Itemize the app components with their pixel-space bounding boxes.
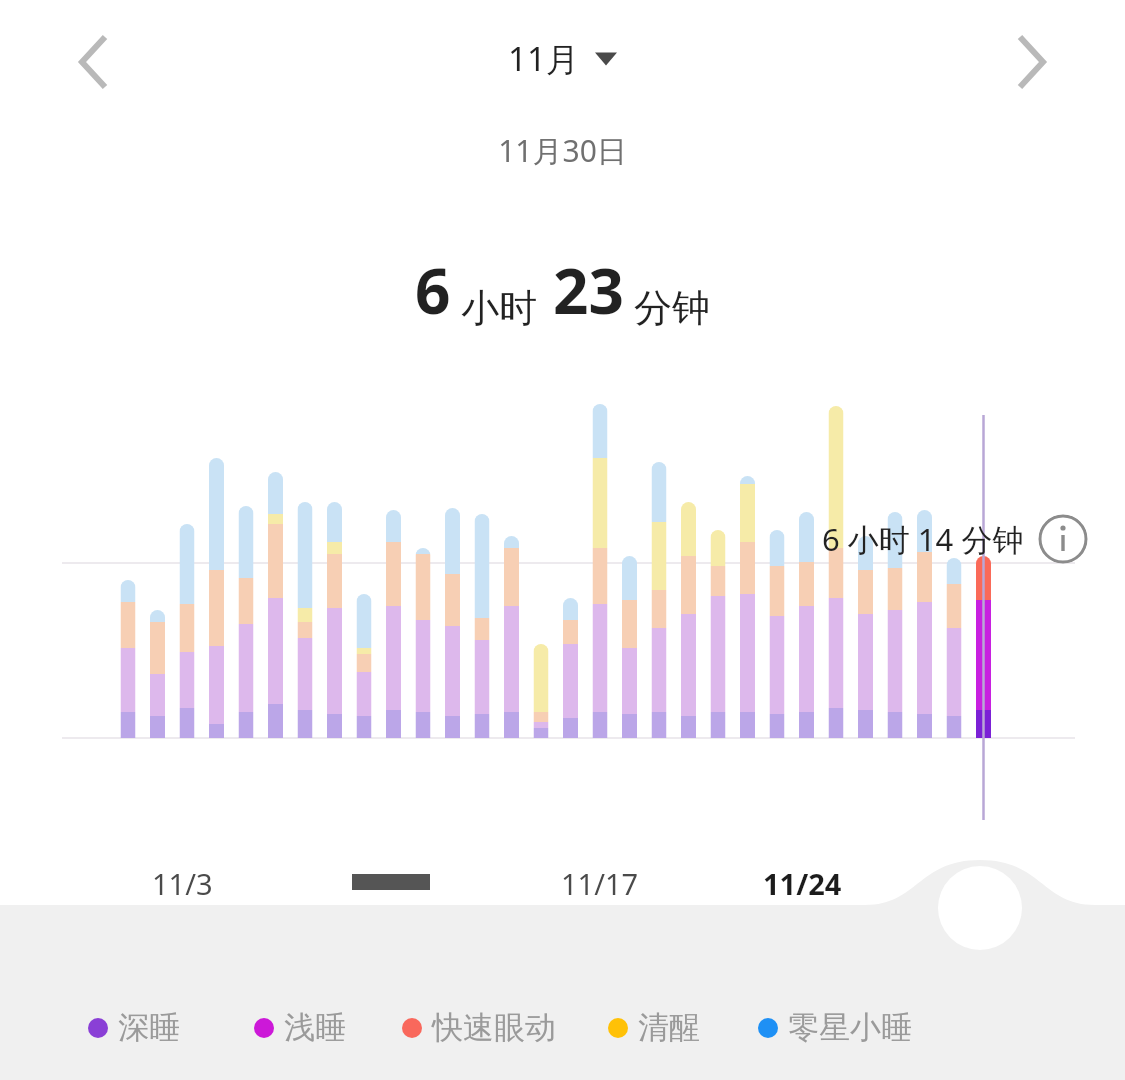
button[interactable]: 快速眼动 [402,1008,556,1047]
staticText: 6 小时 14 分钟 [822,518,1024,560]
staticText: 零星小睡 [788,1008,912,1047]
button[interactable]: 清醒 [608,1008,700,1047]
staticText: 清醒 [638,1008,700,1047]
button[interactable]: Next month [989,20,1073,104]
staticText: 浅睡 [284,1008,346,1047]
staticText: 6 [415,248,451,332]
button[interactable]: 零星小睡 [758,1008,912,1047]
staticText: 小时 [461,284,537,332]
staticText: 11月 [508,36,579,81]
staticText: 11/24 [763,864,842,903]
button[interactable]: Scrub handle [938,866,1022,950]
staticText: 快速眼动 [432,1008,556,1047]
button[interactable]: 深睡 [88,1008,180,1047]
staticText: 11/3 [152,864,213,903]
staticText: 23 [553,248,624,332]
button[interactable]: 浅睡 [254,1008,346,1047]
button[interactable]: 11月 [500,30,625,87]
staticText: 11月30日 [0,130,1125,171]
staticText: 深睡 [118,1008,180,1047]
staticText: 分钟 [634,284,710,332]
staticText: 11/17 [561,864,639,903]
button[interactable]: Info [1038,514,1088,564]
button[interactable]: Previous month [52,20,136,104]
